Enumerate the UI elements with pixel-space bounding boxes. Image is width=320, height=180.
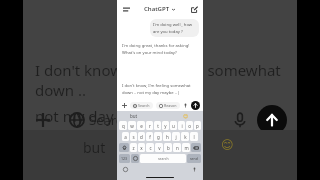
staticText: h (166, 134, 169, 140)
button[interactable]: but (121, 113, 147, 119)
button[interactable]: c (146, 143, 154, 152)
staticText: m (184, 145, 189, 151)
staticText: t (157, 123, 159, 129)
button[interactable]: Send (191, 101, 200, 110)
button[interactable]: i (178, 121, 185, 130)
button[interactable]: k (181, 132, 189, 141)
staticText: but (130, 113, 138, 119)
button[interactable]: d (138, 132, 145, 141)
staticText: Search (89, 111, 131, 129)
button[interactable]: Numbers (119, 154, 130, 163)
button[interactable]: Send (187, 154, 201, 163)
button[interactable]: b (164, 143, 172, 152)
button[interactable]: y (162, 121, 169, 130)
button[interactable]: u (170, 121, 177, 130)
button[interactable]: o (186, 121, 193, 130)
staticText: v (158, 145, 161, 151)
staticText: search (158, 156, 169, 161)
button[interactable]: j (172, 132, 180, 141)
button[interactable]: a (122, 132, 129, 141)
staticText: I'm doing great, thanks for asking! What… (122, 43, 198, 55)
button[interactable]: w (128, 121, 136, 130)
button[interactable]: Voice input (181, 101, 189, 109)
staticText: b (167, 145, 170, 151)
staticText: n (176, 145, 179, 151)
button[interactable]: Emoji (131, 154, 139, 163)
staticText: I don't know, I'm feeling somewhat down … (122, 83, 198, 95)
staticText: z (132, 145, 135, 151)
staticText: a (124, 134, 127, 140)
button[interactable]: 😊 (173, 113, 199, 119)
staticText: d (140, 134, 143, 140)
button[interactable]: l (190, 132, 198, 141)
staticText: w (130, 123, 134, 129)
staticText: r (149, 123, 151, 129)
button[interactable]: r (146, 121, 153, 130)
staticText: o (188, 123, 191, 129)
staticText: Reason (164, 103, 177, 108)
staticText: i (181, 123, 183, 129)
staticText: c (149, 145, 152, 151)
button[interactable]: ChatGPT (144, 5, 175, 13)
button[interactable]: search (140, 154, 186, 163)
button[interactable]: Dictate (191, 166, 198, 173)
staticText: e (140, 123, 143, 129)
button[interactable]: t (154, 121, 161, 130)
button[interactable]: Shift (119, 143, 129, 152)
staticText: but (83, 138, 106, 157)
button[interactable]: e (137, 121, 145, 130)
staticText: x (140, 145, 143, 151)
staticText: q (122, 123, 125, 129)
button[interactable]: Search (130, 102, 153, 109)
button[interactable]: g (154, 132, 162, 141)
button[interactable]: q (119, 121, 127, 130)
staticText: g (157, 134, 160, 140)
button[interactable]: m (182, 143, 190, 152)
staticText: send (190, 156, 198, 161)
staticText: 😊 (183, 113, 189, 119)
staticText: 😊 (221, 138, 234, 152)
button[interactable]: f (146, 132, 153, 141)
button[interactable]: h (163, 132, 171, 141)
staticText: p (196, 123, 199, 129)
button[interactable]: New chat (189, 4, 199, 14)
staticText: I'm doing well , how are you today ? (153, 22, 196, 34)
staticText: s (132, 134, 135, 140)
staticText: l (193, 134, 195, 140)
button[interactable]: v (155, 143, 163, 152)
button[interactable]: Add (120, 101, 128, 109)
staticText: not my day m (35, 106, 132, 126)
button[interactable]: I'm doing well , how are you today ? (150, 19, 199, 37)
button[interactable]: p (194, 121, 201, 130)
staticText: u (172, 123, 175, 129)
staticText: f (149, 134, 151, 140)
staticText: j (175, 134, 177, 140)
staticText: Search (138, 103, 150, 108)
button[interactable]: Menu (121, 4, 131, 14)
button[interactable]: x (138, 143, 145, 152)
button[interactable]: s (130, 132, 137, 141)
button[interactable]: Reason (156, 102, 180, 109)
button[interactable]: Backspace (191, 143, 201, 152)
button[interactable]: Keyboard switch (122, 166, 129, 173)
staticText: 123 (121, 156, 128, 161)
staticText: ChatGPT (144, 5, 170, 13)
staticText: I don't know, I'm feeling somewhat down … (35, 60, 297, 100)
staticText: k (184, 134, 187, 140)
button[interactable]: n (173, 143, 181, 152)
staticText: y (164, 123, 167, 129)
button[interactable]: z (130, 143, 137, 152)
